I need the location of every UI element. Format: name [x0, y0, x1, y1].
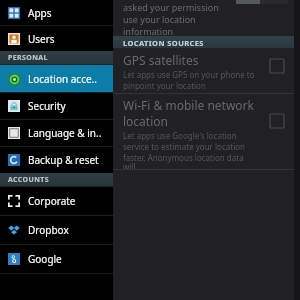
button[interactable]: Toggle location access: [236, 0, 288, 4]
button[interactable]: Corporate: [0, 187, 113, 215]
staticText: Wi-Fi & mobile network: [123, 97, 254, 113]
button[interactable]: Security: [0, 93, 113, 119]
button[interactable]: Location acce..: [0, 65, 113, 92]
staticText: information: [123, 25, 174, 36]
button[interactable]: Apps: [0, 0, 113, 25]
staticText: Let apps use GPS on your phone to: [123, 69, 255, 80]
staticText: Security: [28, 99, 66, 113]
button[interactable]: Backup & reset: [0, 147, 113, 173]
staticText: pinpoint your location: [123, 80, 206, 91]
button[interactable]: Wi-Fi & mobile network checkbox: [270, 114, 284, 128]
staticText: service to estimate your location: [123, 141, 245, 152]
staticText: Location acce..: [28, 72, 97, 86]
staticText: use your location: [123, 13, 196, 25]
staticText: Users: [28, 32, 55, 46]
staticText: location: [123, 113, 168, 129]
staticText: Dropbox: [28, 223, 69, 237]
staticText: GPS satellites: [123, 52, 199, 68]
button[interactable]: Language & in..: [0, 120, 113, 146]
button[interactable]: Google: [0, 245, 113, 273]
staticText: LOCATION SOURCES: [123, 38, 204, 48]
staticText: Google: [28, 252, 62, 266]
staticText: Let apps use Google's location: [123, 130, 237, 141]
staticText: asked your permission: [123, 1, 219, 13]
staticText: PERSONAL: [8, 53, 48, 63]
button[interactable]: Dropbox: [0, 216, 113, 244]
staticText: Apps: [28, 6, 52, 20]
staticText: Corporate: [28, 194, 76, 208]
staticText: Backup & reset: [28, 153, 99, 167]
button[interactable]: Wi-Fi & mobile network: [113, 94, 300, 169]
button[interactable]: GPS satellites checkbox: [270, 59, 284, 73]
staticText: faster. Anonymous location data will: [123, 152, 256, 169]
button[interactable]: Users: [0, 26, 113, 51]
staticText: Language & in..: [28, 126, 102, 140]
button[interactable]: GPS satellites: [113, 49, 300, 93]
staticText: ACCOUNTS: [8, 175, 50, 185]
